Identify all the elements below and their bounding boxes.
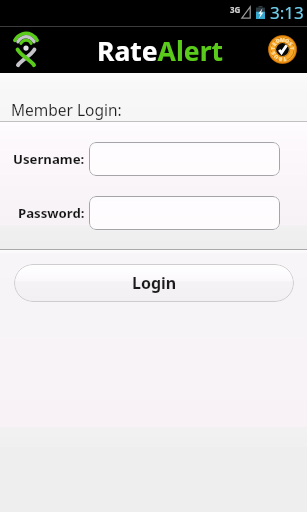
staticText: 3:13 bbox=[270, 1, 304, 24]
staticText: Password: bbox=[18, 204, 85, 222]
staticText: Username: bbox=[13, 150, 85, 168]
staticText: Login bbox=[132, 272, 177, 294]
button[interactable]: RateAlert logo bbox=[5, 29, 47, 71]
button[interactable] bbox=[89, 196, 280, 230]
staticText: 3G bbox=[230, 4, 241, 15]
staticText: RateAlert bbox=[97, 33, 223, 69]
button[interactable]: Most trusted badge bbox=[268, 35, 297, 64]
staticText: Member Login: bbox=[11, 99, 122, 120]
button[interactable] bbox=[89, 142, 280, 176]
button[interactable]: Login bbox=[14, 264, 294, 302]
